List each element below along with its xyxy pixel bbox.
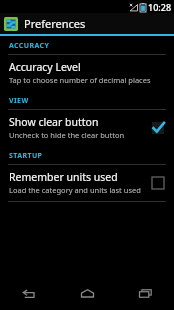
staticText: VIEW	[9, 96, 29, 106]
staticText: Preferences	[24, 16, 86, 31]
button[interactable]: Checked	[150, 120, 166, 136]
staticText: Accuracy Level	[9, 60, 81, 74]
button[interactable]: Unchecked	[150, 175, 166, 191]
staticText: Uncheck to hide the clear button	[9, 130, 125, 140]
button[interactable]: Accuracy Level	[0, 55, 174, 91]
staticText: STARTUP	[9, 151, 43, 161]
button[interactable]: Preferences	[0, 13, 174, 34]
button[interactable]: Remember units used	[0, 165, 174, 201]
staticText: Tap to choose number of decimal places	[9, 75, 151, 85]
button[interactable]: Show clear button	[0, 110, 174, 146]
staticText: Load the category and units last used	[9, 185, 141, 195]
staticText: ACCURACY	[9, 41, 50, 51]
staticText: Remember units used	[9, 170, 118, 184]
button[interactable]: Back	[0, 277, 58, 310]
button[interactable]: Home	[58, 277, 116, 310]
staticText: Show clear button	[9, 115, 99, 129]
staticText: 10:28	[148, 1, 172, 13]
button[interactable]: Recent apps	[116, 277, 174, 310]
